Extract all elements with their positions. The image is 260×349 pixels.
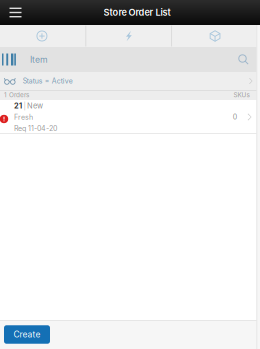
button[interactable]: Menu xyxy=(0,0,31,25)
staticText: Store Order List xyxy=(103,7,170,18)
staticText: SKUs xyxy=(233,91,249,99)
button[interactable]: Add xyxy=(0,25,85,47)
staticText: 1 Orders xyxy=(4,91,29,99)
button[interactable]: Search xyxy=(230,47,256,72)
staticText: | xyxy=(23,101,25,110)
button[interactable]: Create xyxy=(4,325,50,344)
staticText: 0 xyxy=(233,113,237,121)
staticText: Req 11-04-20 xyxy=(14,124,57,133)
staticText: Status = Active xyxy=(23,77,73,85)
staticText: Fresh xyxy=(14,113,33,121)
button[interactable]: 21 xyxy=(0,100,256,134)
button[interactable]: Quick actions xyxy=(86,25,171,47)
staticText: 21 xyxy=(14,101,22,110)
button[interactable]: Scan item xyxy=(0,47,21,72)
button[interactable]: Products xyxy=(172,25,258,47)
staticText: Item xyxy=(30,54,48,65)
button[interactable]: Status = Active xyxy=(0,72,256,90)
staticText: Create xyxy=(13,329,40,340)
staticText: New xyxy=(27,101,43,110)
